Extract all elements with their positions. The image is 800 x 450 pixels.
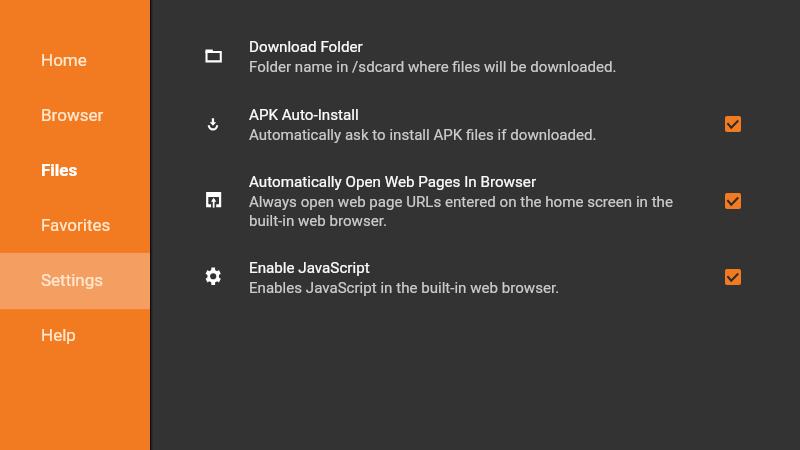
staticText: Files — [41, 160, 78, 180]
button[interactable]: Enable JavaScript — [0, 243, 800, 311]
staticText: Download Folder — [249, 38, 363, 56]
staticText: Browser — [41, 105, 104, 125]
button[interactable]: Favorites — [0, 197, 150, 252]
staticText: Enable JavaScript — [249, 259, 370, 277]
button[interactable]: Help — [0, 307, 150, 362]
staticText: Home — [41, 50, 87, 70]
button[interactable]: Toggle APK Auto-Install — [719, 110, 747, 138]
staticText: APK Auto-Install — [249, 106, 359, 124]
staticText: Automatically Open Web Pages In Browser — [249, 173, 537, 191]
button[interactable]: Settings — [0, 252, 150, 307]
button[interactable]: Files — [0, 142, 150, 197]
staticText: Settings — [41, 270, 104, 290]
button[interactable]: Toggle Automatically Open Web Pages In B… — [719, 187, 747, 215]
staticText: Always open web page URLs entered on the… — [249, 193, 689, 230]
staticText: Automatically ask to install APK files i… — [249, 126, 597, 144]
staticText: Folder name in /sdcard where files will … — [249, 58, 617, 76]
button[interactable]: Automatically Open Web Pages In Browser — [0, 158, 800, 243]
button[interactable]: Home — [0, 32, 150, 87]
button[interactable]: Browser — [0, 87, 150, 142]
button[interactable]: Toggle Enable JavaScript — [719, 263, 747, 291]
button[interactable]: APK Auto-Install — [0, 90, 800, 158]
button[interactable]: Download Folder — [0, 22, 800, 90]
staticText: Favorites — [41, 215, 111, 235]
staticText: Enables JavaScript in the built-in web b… — [249, 279, 560, 297]
staticText: Help — [41, 325, 76, 345]
